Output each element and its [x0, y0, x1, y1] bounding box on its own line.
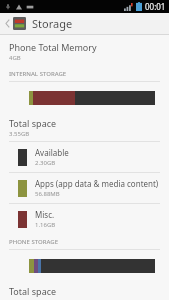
- button[interactable]: Misc.: [0, 204, 169, 234]
- button[interactable]: Total space: [0, 116, 169, 141]
- button[interactable]: Apps (app data & media content): [0, 173, 169, 203]
- button[interactable]: Total space: [0, 284, 169, 300]
- other: Navigate up: [5, 19, 10, 28]
- staticText: INTERNAL STORAGE: [9, 70, 67, 78]
- staticText: Available: [35, 147, 69, 158]
- staticText: 2.30GB: [35, 159, 56, 167]
- staticText: 3.55GB: [9, 130, 30, 138]
- staticText: 1.16GB: [35, 221, 56, 229]
- staticText: Storage: [32, 16, 73, 31]
- staticText: Phone Total Memory: [9, 41, 97, 53]
- staticText: 00:01: [145, 1, 166, 12]
- button[interactable]: Navigate up: [0, 13, 169, 34]
- button[interactable]: Available: [0, 142, 169, 172]
- staticText: Total space: [9, 285, 57, 297]
- staticText: Total space: [9, 117, 57, 129]
- button[interactable]: Phone Total Memory: [0, 39, 169, 64]
- staticText: Misc.: [35, 209, 55, 220]
- staticText: PHONE STORAGE: [9, 238, 58, 246]
- staticText: Apps (app data & media content): [35, 178, 159, 189]
- staticText: 56.88MB: [35, 190, 60, 198]
- staticText: 4GB: [9, 54, 21, 62]
